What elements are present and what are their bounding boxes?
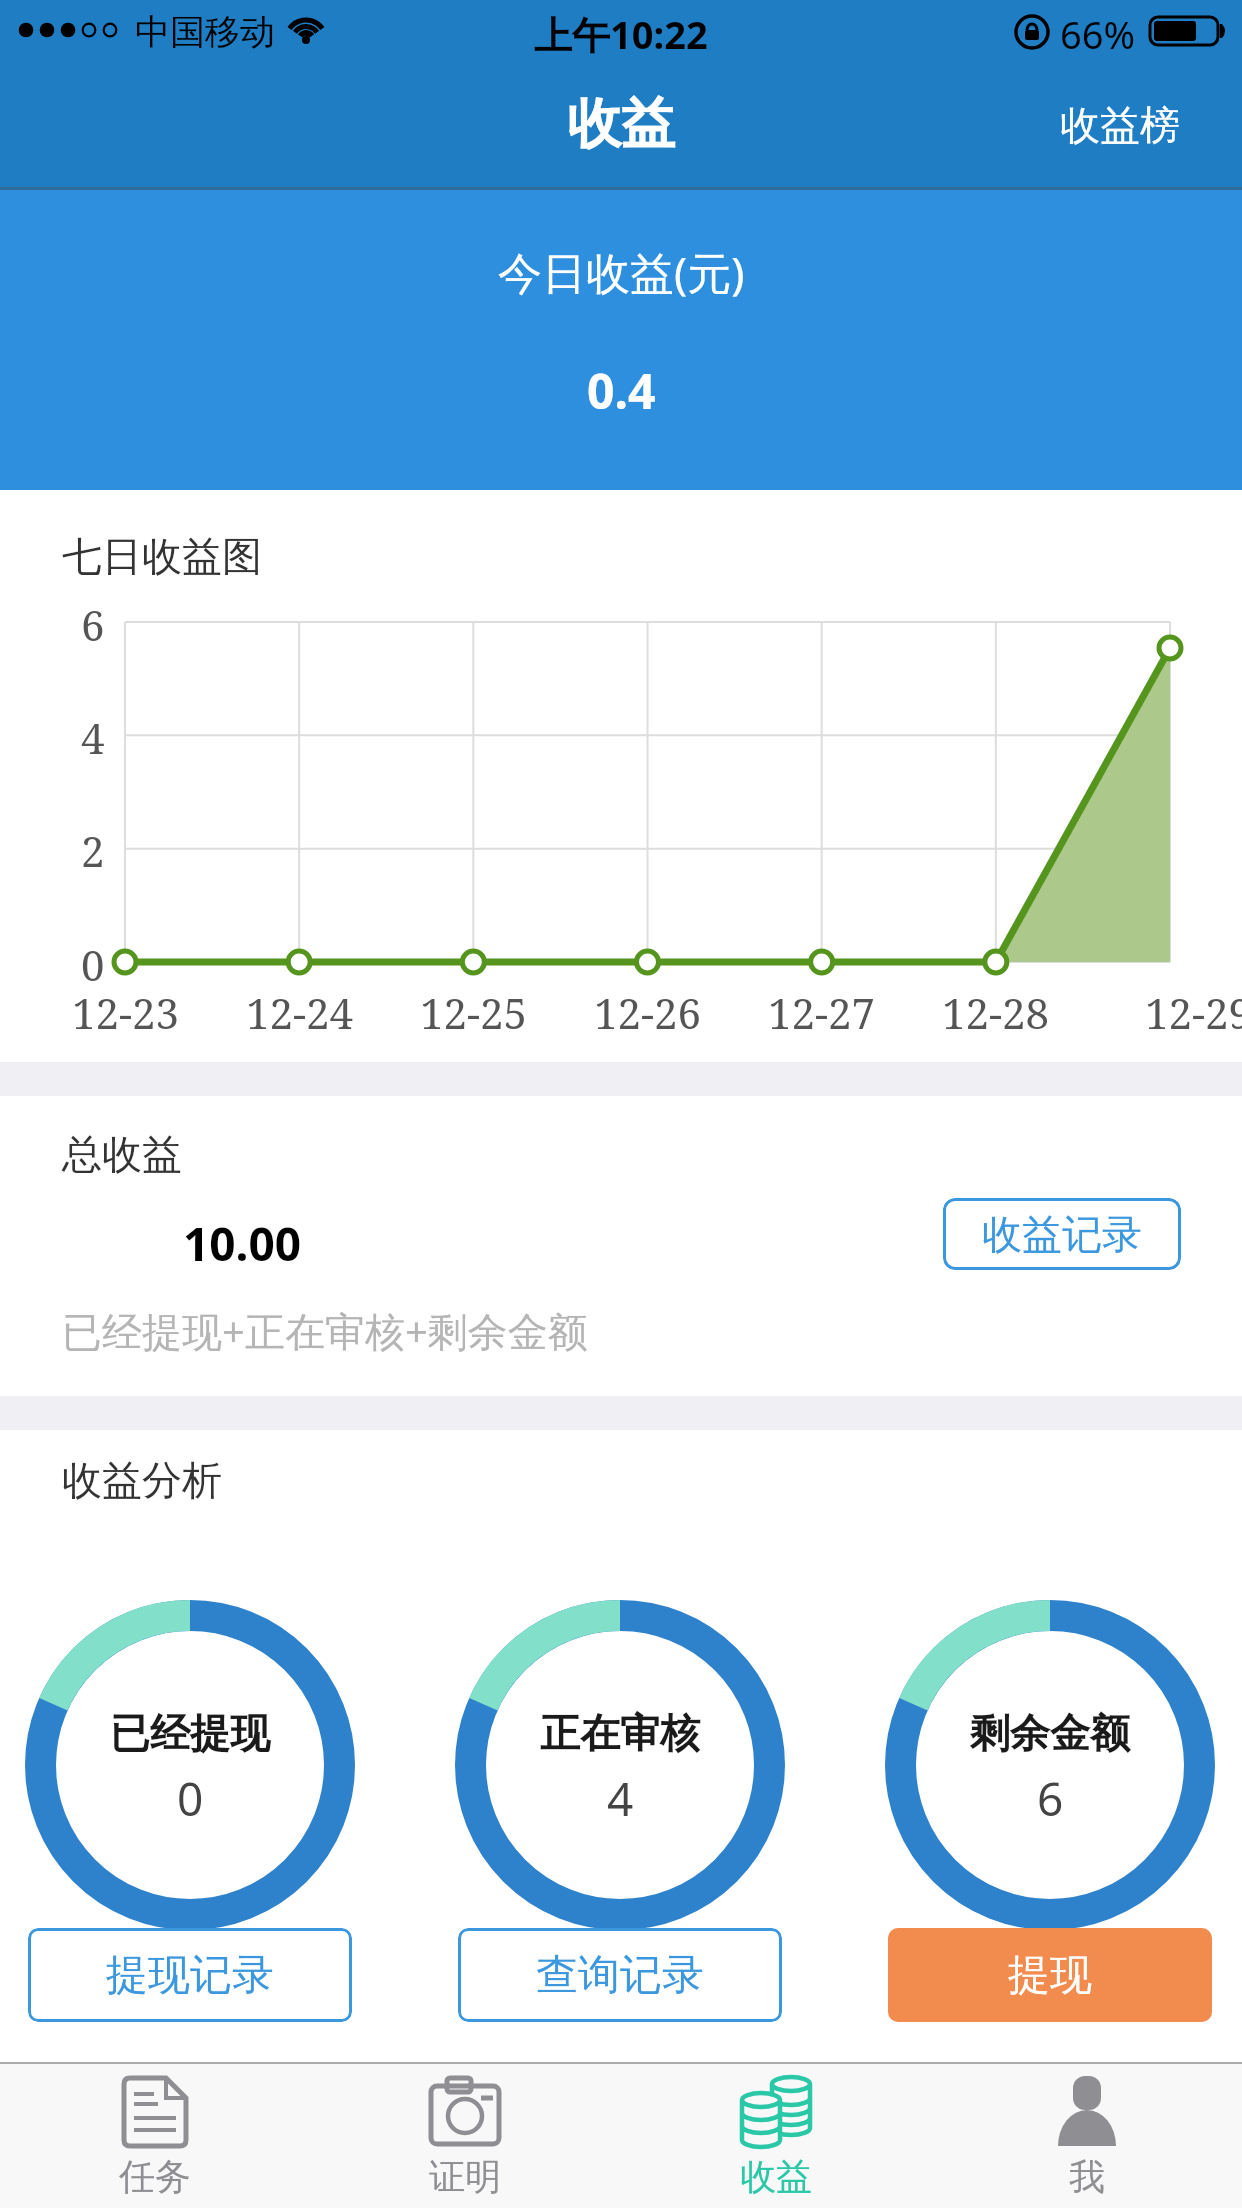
staticText: 今日收益(元) — [498, 242, 745, 298]
staticText: 12-24 — [246, 984, 353, 1036]
button[interactable]: 收益榜 — [1030, 95, 1210, 155]
staticText: 任务 — [119, 2154, 191, 2199]
staticText: 提现 — [1008, 1949, 1092, 2002]
staticText: 剩余金额 — [970, 1708, 1130, 1758]
button[interactable]: 查询记录 — [458, 1928, 782, 2022]
staticText: 我 — [1069, 2154, 1105, 2199]
staticText: 12-26 — [594, 984, 701, 1036]
staticText: 12-25 — [420, 984, 527, 1036]
button[interactable]: 任务 — [35, 2062, 275, 2208]
staticText: 查询记录 — [536, 1949, 704, 2002]
button[interactable]: 收益 — [656, 2062, 896, 2208]
staticText: 提现记录 — [106, 1949, 274, 2002]
staticText: 4 — [81, 709, 105, 761]
staticText: 6 — [1037, 1767, 1064, 1827]
staticText: 正在审核 — [540, 1708, 700, 1758]
staticText: 0 — [177, 1767, 204, 1827]
button[interactable]: 提现记录 — [28, 1928, 352, 2022]
staticText: 收益分析 — [62, 1455, 222, 1505]
staticText: 0 — [81, 936, 105, 988]
staticText: 10.00 — [183, 1212, 302, 1268]
staticText: 6 — [81, 596, 105, 648]
button[interactable]: 提现 — [888, 1928, 1212, 2022]
staticText: 上午10:22 — [534, 8, 708, 54]
staticText: 0.4 — [587, 358, 656, 418]
staticText: 2 — [81, 822, 105, 874]
staticText: 收益 — [567, 90, 675, 158]
button[interactable]: 证明 — [345, 2062, 585, 2208]
staticText: 收益榜 — [1060, 100, 1180, 150]
staticText: 66% — [1060, 8, 1136, 54]
staticText: 收益 — [740, 2154, 812, 2199]
button[interactable]: 收益记录 — [943, 1198, 1181, 1270]
staticText: 七日收益图 — [62, 531, 262, 581]
staticText: 总收益 — [62, 1129, 182, 1179]
staticText: 12-23 — [72, 984, 179, 1036]
staticText: 证明 — [429, 2154, 501, 2199]
staticText: 已经提现+正在审核+剩余金额 — [62, 1303, 588, 1358]
staticText: 12-29 — [1145, 984, 1242, 1036]
staticText: 已经提现 — [110, 1708, 270, 1758]
staticText: 12-28 — [942, 984, 1049, 1036]
staticText: 中国移动 — [135, 10, 275, 52]
staticText: 收益记录 — [982, 1209, 1142, 1259]
staticText: 12-27 — [768, 984, 875, 1036]
button[interactable]: 我 — [967, 2062, 1207, 2208]
staticText: 4 — [607, 1767, 634, 1827]
